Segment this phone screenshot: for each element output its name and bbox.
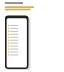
button[interactable]	[0, 0, 64, 72]
